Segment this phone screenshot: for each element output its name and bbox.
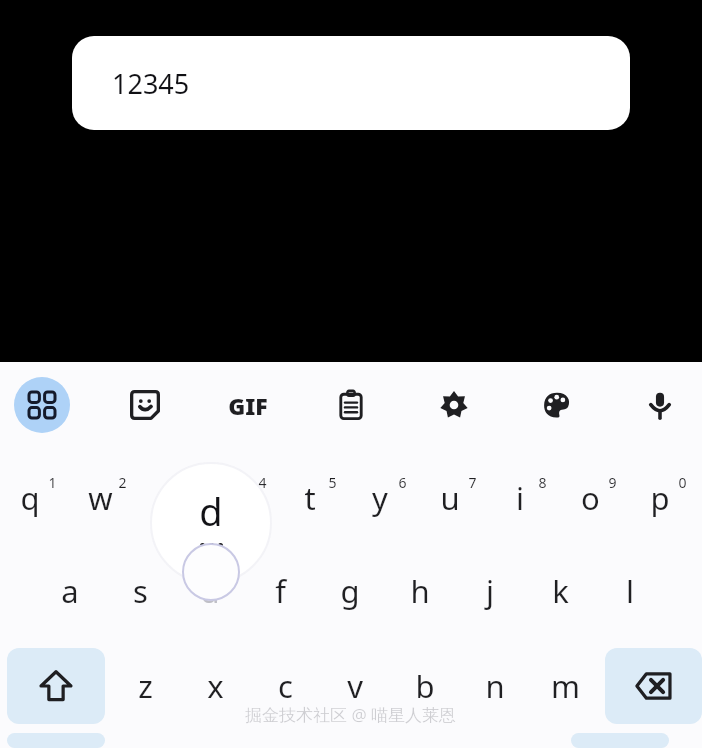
staticText: s [133, 570, 148, 612]
button[interactable]: c [250, 638, 320, 733]
staticText: x [207, 665, 224, 707]
button[interactable]: r [210, 448, 280, 543]
button[interactable]: Clipboard [323, 377, 379, 433]
staticText: 6 [398, 473, 407, 492]
button[interactable]: Theme [529, 377, 585, 433]
button[interactable]: t [280, 448, 350, 543]
staticText: 8 [538, 473, 547, 492]
button[interactable]: Backspace [605, 648, 702, 724]
button[interactable]: q [0, 448, 70, 543]
staticText: GIF [228, 390, 268, 421]
staticText: l [626, 570, 634, 612]
staticText: a [61, 570, 79, 612]
staticText: u [440, 477, 460, 519]
staticText: 0 [678, 473, 687, 492]
staticText: q [20, 477, 40, 519]
button[interactable]: Symbols [7, 733, 105, 748]
staticText: y [372, 477, 388, 519]
button[interactable]: d [175, 543, 245, 638]
staticText: d [199, 485, 223, 537]
staticText: n [485, 665, 505, 707]
staticText: m [551, 665, 580, 707]
staticText: o [581, 477, 600, 519]
button[interactable]: i [490, 448, 560, 543]
staticText: g [340, 570, 360, 612]
button[interactable]: y [350, 448, 420, 543]
button[interactable]: Stickers [117, 377, 173, 433]
staticText: f [275, 570, 286, 612]
staticText: v [347, 665, 363, 707]
button[interactable]: f [245, 543, 315, 638]
button[interactable]: 12345 [72, 36, 630, 130]
staticText: 9 [608, 473, 617, 492]
button[interactable] [140, 448, 210, 543]
button[interactable]: l [595, 543, 665, 638]
staticText: d [200, 570, 220, 612]
button[interactable]: k [525, 543, 595, 638]
button[interactable]: b [390, 638, 460, 733]
staticText: k [552, 570, 569, 612]
button[interactable]: m [530, 638, 600, 733]
button[interactable]: Voice input [632, 377, 688, 433]
button[interactable]: j [455, 543, 525, 638]
staticText: c [278, 665, 293, 707]
button[interactable]: a [35, 543, 105, 638]
button[interactable]: Keyboard modes [14, 377, 70, 433]
button[interactable]: z [110, 638, 180, 733]
staticText: p [650, 477, 670, 519]
button[interactable]: s [105, 543, 175, 638]
button[interactable]: Settings [426, 377, 482, 433]
button[interactable]: u [420, 448, 490, 543]
staticText: 4 [258, 473, 267, 492]
staticText: j [486, 570, 494, 612]
staticText: 掘金技术社区 @ 喵星人莱恩 [245, 703, 457, 726]
staticText: z [138, 665, 153, 707]
staticText: t [304, 477, 316, 519]
button[interactable]: Enter [571, 733, 669, 748]
staticText: i [516, 477, 524, 519]
button[interactable]: n [460, 638, 530, 733]
button[interactable]: p [630, 448, 700, 543]
staticText: b [415, 665, 435, 707]
button[interactable]: Shift [7, 648, 105, 724]
staticText: h [410, 570, 430, 612]
staticText: 5 [328, 473, 337, 492]
staticText: w [88, 477, 113, 519]
button[interactable]: x [180, 638, 250, 733]
staticText: 2 [118, 473, 127, 492]
button[interactable]: h [385, 543, 455, 638]
button[interactable]: g [315, 543, 385, 638]
button[interactable]: v [320, 638, 390, 733]
button[interactable]: w [70, 448, 140, 543]
button[interactable]: o [560, 448, 630, 543]
button[interactable]: GIF [220, 377, 276, 433]
staticText: 7 [468, 473, 477, 492]
staticText: 12345 [112, 65, 190, 102]
staticText: 1 [48, 473, 57, 492]
